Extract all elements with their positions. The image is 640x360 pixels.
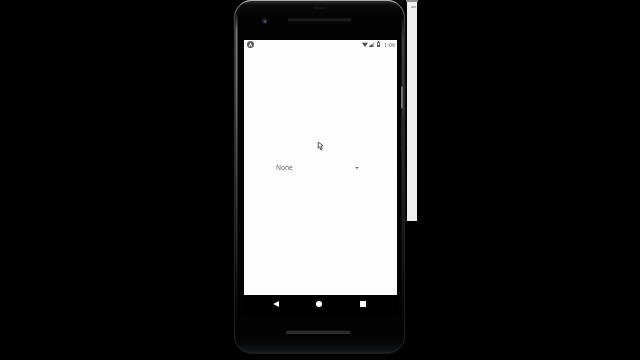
staticText: None (276, 163, 293, 172)
button[interactable]: None (276, 160, 365, 175)
staticText: 1:06 (384, 41, 396, 49)
button[interactable]: Back (257, 294, 294, 314)
button[interactable]: Recent apps (344, 294, 381, 314)
button[interactable]: Home (300, 294, 337, 314)
